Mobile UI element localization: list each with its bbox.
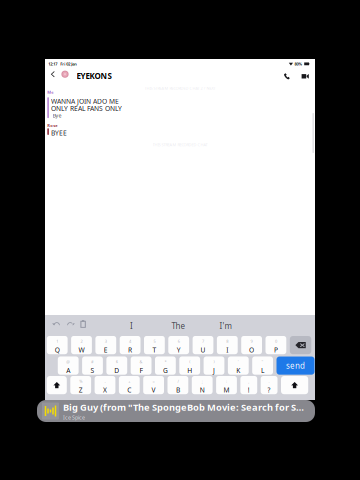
staticText: A [66, 366, 70, 375]
button[interactable]: 2 [71, 336, 92, 354]
button[interactable]: 9 [241, 336, 262, 354]
button[interactable]: 1 [47, 336, 68, 354]
staticText: 0 [275, 339, 277, 344]
staticText: 2 [80, 339, 82, 344]
staticText: Bye [52, 112, 61, 119]
button[interactable]: , [240, 376, 257, 394]
button[interactable]: # [82, 356, 103, 375]
button[interactable]: ' [228, 356, 249, 375]
staticText: & [140, 359, 143, 364]
staticText: Q [55, 345, 60, 354]
staticText: ? [268, 385, 271, 394]
button[interactable]: Shift [281, 376, 308, 394]
staticText: O [249, 345, 254, 354]
button[interactable]: % [70, 376, 91, 394]
staticText: $ [116, 359, 118, 364]
staticText: The [171, 321, 185, 331]
staticText: WANNA JOIN ADO ME [51, 97, 119, 106]
staticText: J [213, 366, 215, 375]
button[interactable]: 4 [120, 336, 140, 354]
staticText: 7 [202, 339, 204, 344]
staticText: X [103, 385, 107, 394]
button[interactable]: 3 [95, 336, 116, 354]
button[interactable]: Undo [51, 319, 62, 329]
staticText: ' [238, 359, 239, 364]
staticText: , [248, 379, 249, 384]
staticText: I [226, 345, 228, 354]
button[interactable]: Call [281, 71, 292, 82]
button[interactable]: @ [58, 356, 79, 375]
button[interactable]: . [261, 376, 277, 394]
button[interactable]: 6 [168, 336, 189, 354]
button[interactable]: $ [106, 356, 127, 375]
button[interactable]: & [131, 356, 151, 375]
button[interactable]: Paste [79, 319, 87, 329]
staticText: EYEKONS [77, 71, 112, 81]
staticText: C [127, 385, 131, 394]
button[interactable]: Video call [299, 71, 311, 81]
staticText: N [200, 385, 205, 394]
staticText: M [223, 385, 229, 394]
staticText: W [78, 345, 84, 354]
staticText: Me [47, 90, 53, 95]
staticText: THIS STREAM RECORDED CHAT 2 ? NEXT [144, 85, 215, 91]
staticText: D [114, 366, 119, 375]
button[interactable]: : [216, 376, 237, 394]
button[interactable]: = [143, 376, 164, 394]
button[interactable]: ; [192, 376, 213, 394]
button[interactable]: - [95, 376, 115, 394]
button[interactable]: I [108, 319, 155, 333]
staticText: 4 [129, 339, 131, 344]
button[interactable]: 7 [193, 336, 213, 354]
staticText: I'm [219, 321, 231, 331]
button[interactable]: + [119, 376, 140, 394]
button[interactable]: Shift [47, 376, 67, 394]
staticText: L [261, 366, 264, 375]
button[interactable]: " [252, 356, 273, 375]
staticText: / [177, 379, 178, 384]
staticText: : [226, 379, 227, 384]
staticText: ; [202, 379, 203, 384]
staticText: % [79, 379, 82, 384]
staticText: F [140, 366, 143, 375]
staticText: . [269, 379, 270, 384]
staticText: " [262, 359, 264, 364]
staticText: K [236, 366, 240, 375]
staticText: H [187, 366, 192, 375]
button[interactable]: * [155, 356, 176, 375]
button[interactable]: Back [45, 68, 59, 81]
button[interactable]: The [155, 319, 202, 333]
staticText: 80% [294, 61, 302, 66]
button[interactable]: ( [179, 356, 200, 375]
staticText: + [128, 379, 130, 384]
staticText: R [128, 345, 132, 354]
staticText: 9 [251, 339, 253, 344]
staticText: B [176, 385, 180, 394]
staticText: ! [248, 385, 250, 394]
button[interactable]: send [276, 356, 314, 375]
staticText: 5 [153, 339, 155, 344]
staticText: ONLY REAL FANS ONLY [51, 104, 122, 113]
staticText: E [104, 345, 108, 354]
staticText: U [200, 345, 205, 354]
button[interactable]: I'm [202, 319, 249, 333]
staticText: 12:17 Fri 02 Jan [48, 61, 77, 66]
staticText: send [286, 360, 305, 371]
staticText: ( [189, 359, 190, 364]
button[interactable]: 0 [265, 336, 286, 354]
button[interactable]: ) [204, 356, 224, 375]
staticText: T [152, 345, 156, 354]
button[interactable]: Redo [65, 319, 76, 329]
staticText: * [164, 359, 166, 364]
staticText: Ice Spice [63, 414, 85, 421]
button[interactable]: 8 [217, 336, 238, 354]
staticText: @ [66, 359, 70, 364]
staticText: 8 [226, 339, 228, 344]
button[interactable]: / [167, 376, 188, 394]
button[interactable]: Delete [290, 336, 311, 354]
button[interactable]: 5 [144, 336, 165, 354]
staticText: S [90, 366, 94, 375]
staticText: Rose [47, 123, 57, 128]
staticText: Z [79, 385, 83, 394]
staticText: V [152, 385, 156, 394]
